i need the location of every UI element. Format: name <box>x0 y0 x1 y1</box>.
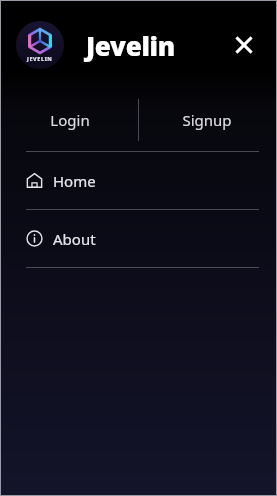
button[interactable]: About <box>1 210 276 267</box>
button[interactable]: Signup <box>138 89 276 151</box>
staticText: Home <box>53 171 96 191</box>
staticText: Jevelin <box>86 28 175 63</box>
staticText: JEVELIN <box>27 55 53 62</box>
staticText: Login <box>50 110 90 130</box>
button[interactable]: Close <box>222 23 266 67</box>
staticText: About <box>53 229 96 249</box>
staticText: Signup <box>182 110 232 130</box>
button[interactable]: Login <box>1 89 138 151</box>
button[interactable]: Jevelin logo <box>16 21 64 69</box>
button[interactable]: Home <box>1 152 276 209</box>
